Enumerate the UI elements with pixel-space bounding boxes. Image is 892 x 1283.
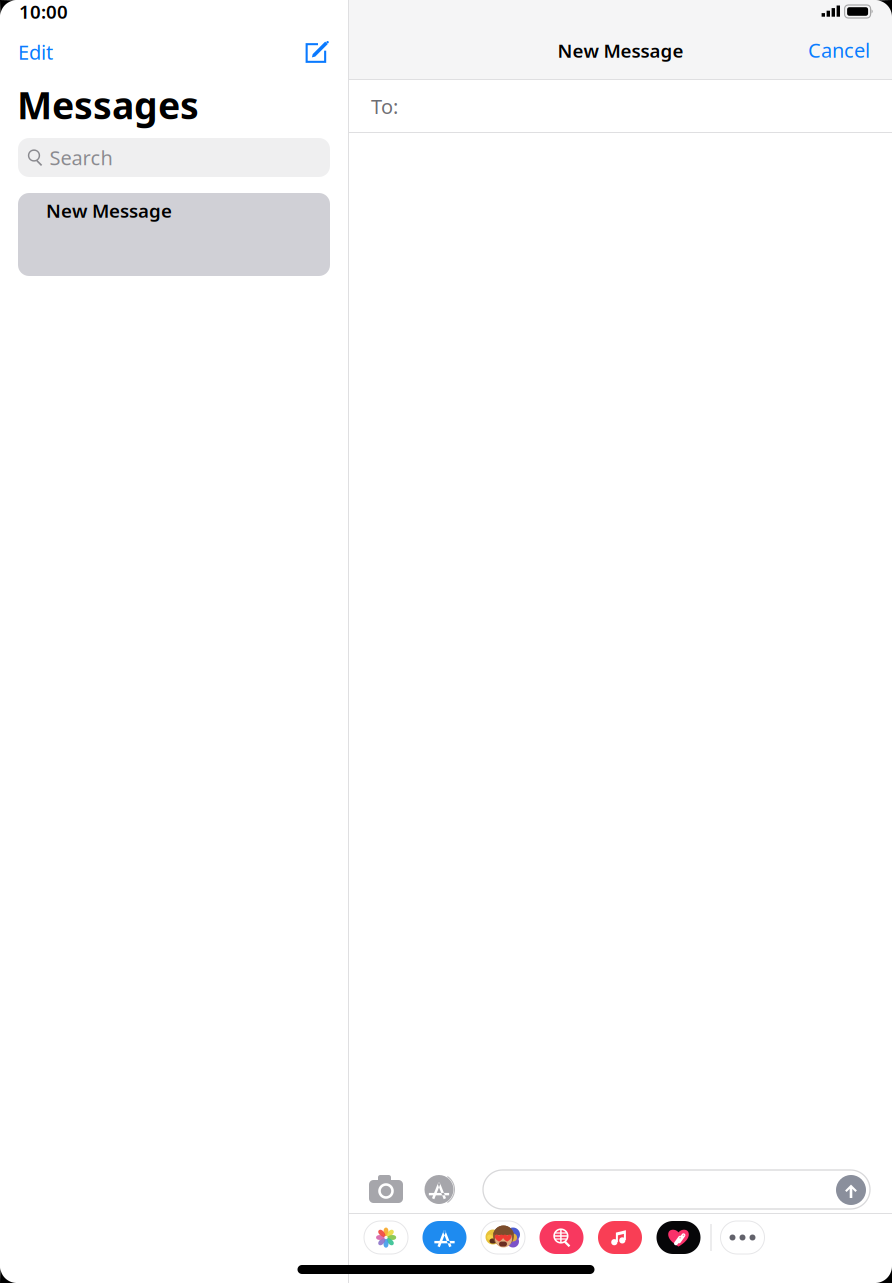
button[interactable]: Digital Touch — [656, 1221, 700, 1254]
staticText: New Message — [557, 38, 683, 63]
button[interactable]: More apps — [720, 1221, 764, 1254]
button[interactable]: iMessage text field — [483, 1170, 870, 1209]
button[interactable]: Edit — [0, 31, 71, 73]
button[interactable]: App Store — [422, 1221, 466, 1254]
staticText: To: — [371, 93, 398, 120]
button[interactable]: Send — [836, 1175, 866, 1205]
button[interactable]: Music — [598, 1221, 642, 1254]
button[interactable]: New Message — [18, 193, 330, 276]
staticText: Search — [50, 144, 113, 171]
button[interactable]: Compose new message — [292, 31, 348, 73]
button[interactable]: Images — [539, 1221, 583, 1254]
button[interactable]: Cancel — [786, 33, 892, 67]
staticText: New Message — [46, 198, 172, 223]
staticText: Cancel — [808, 37, 870, 63]
staticText: 10:00 — [19, 0, 68, 24]
button[interactable]: Memoji — [481, 1221, 525, 1254]
staticText: Messages — [17, 80, 199, 130]
button[interactable]: Camera — [369, 1175, 403, 1203]
staticText: Edit — [18, 39, 53, 65]
button[interactable]: Photos — [364, 1221, 408, 1254]
button[interactable]: App Store — [422, 1175, 456, 1204]
